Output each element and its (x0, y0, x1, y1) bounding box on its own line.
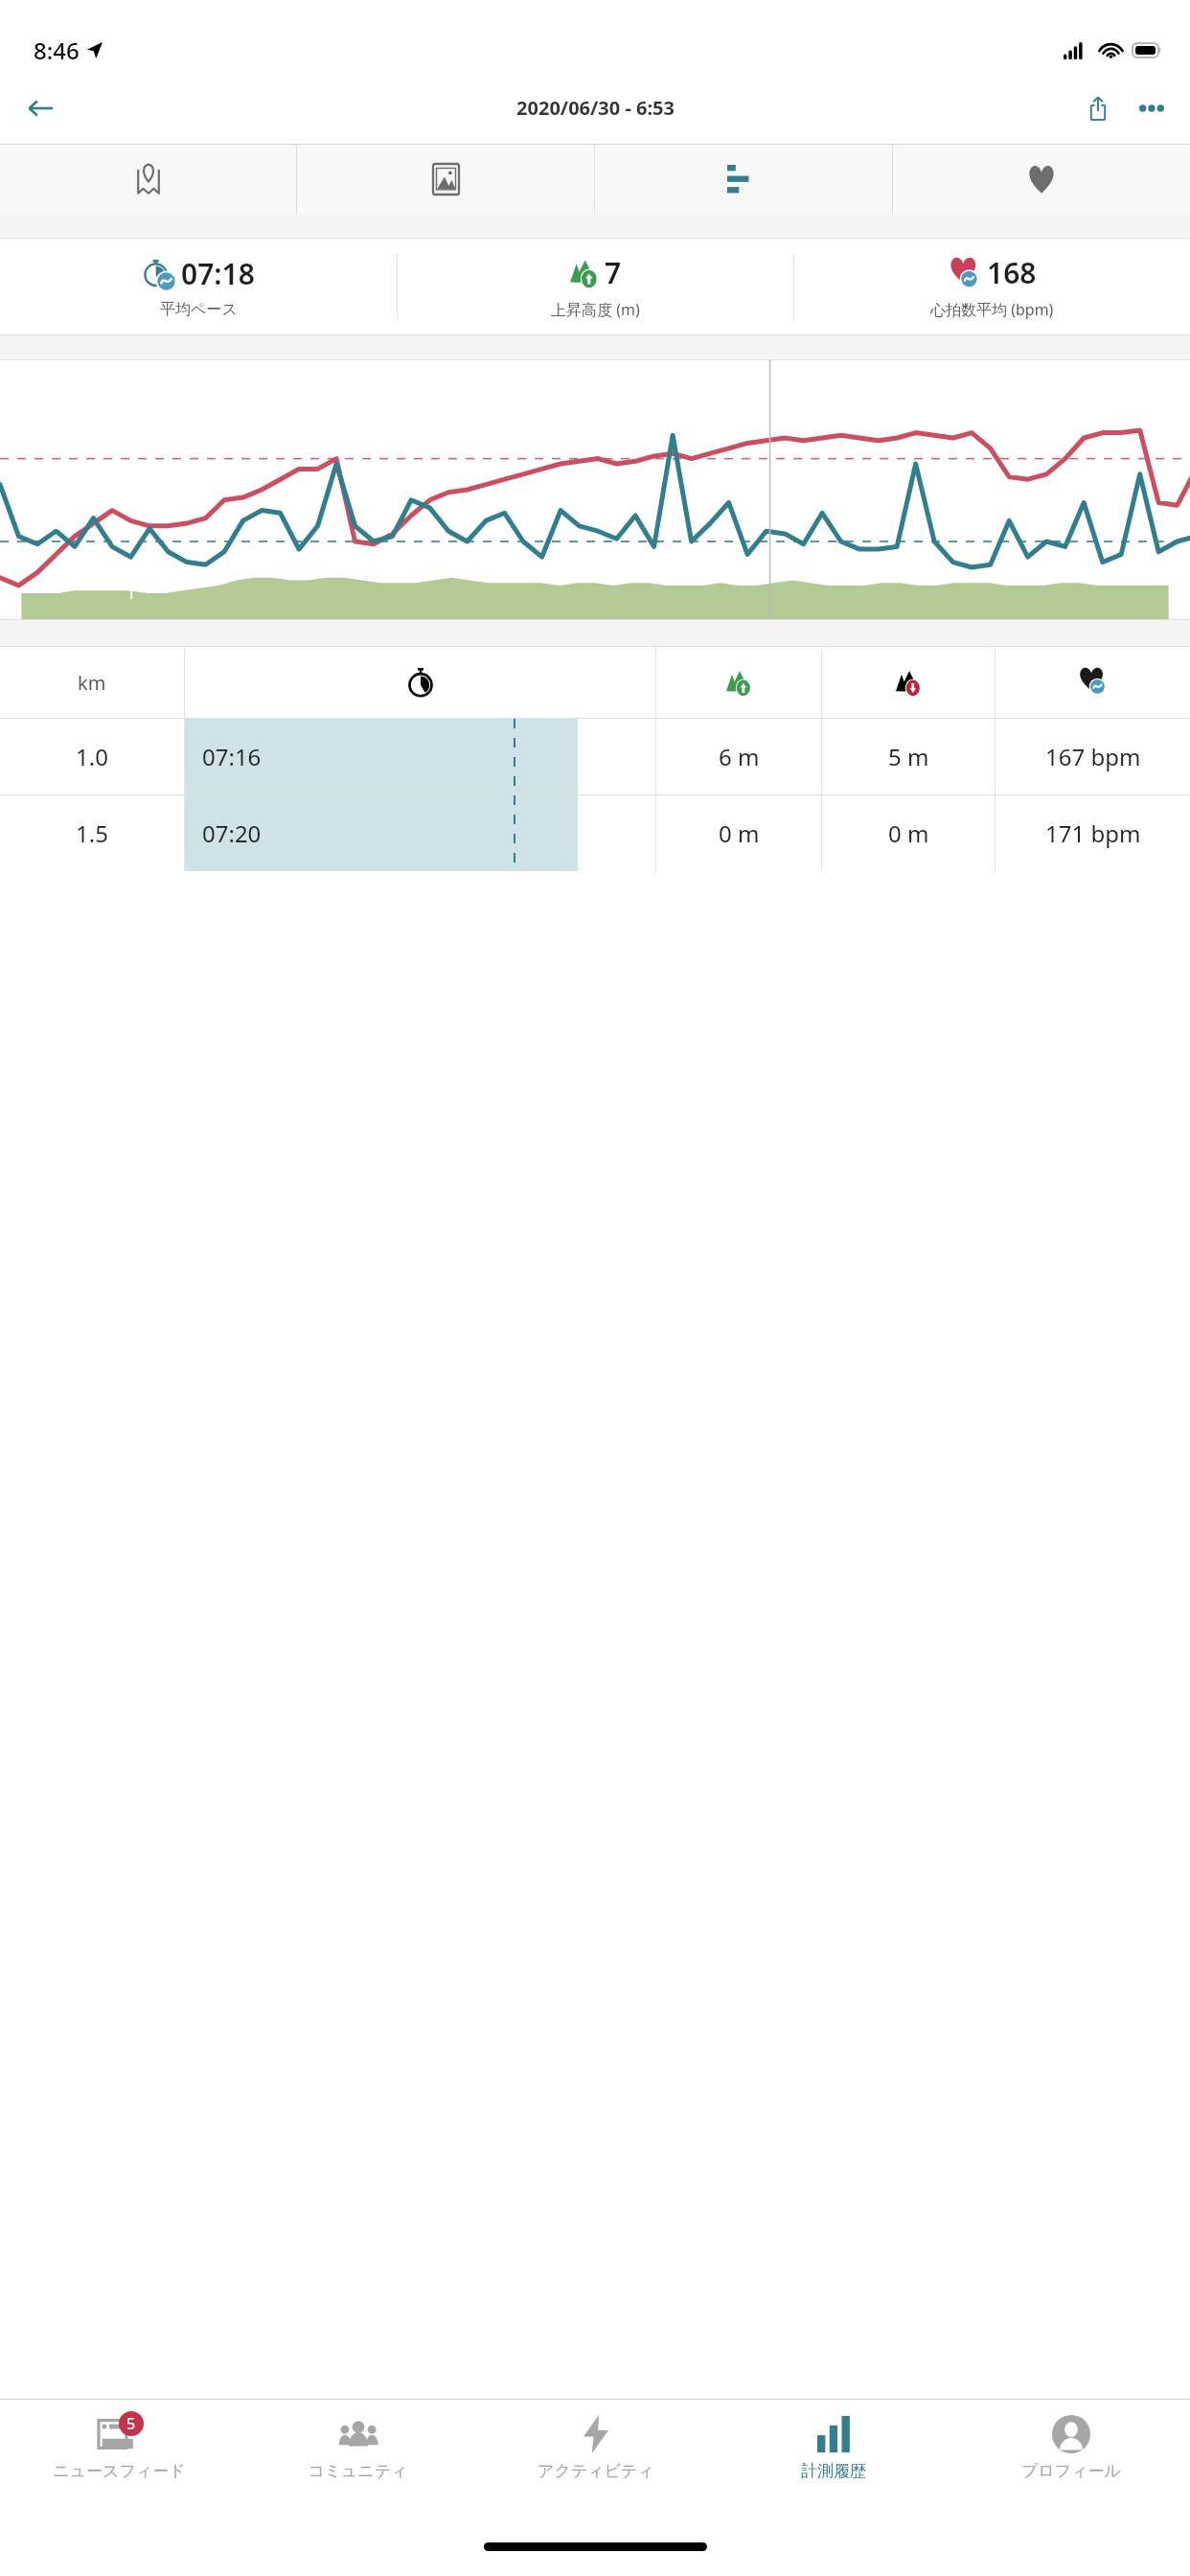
button[interactable]: 1.5 (0, 795, 1190, 871)
button[interactable]: Photos (297, 145, 594, 214)
staticText: 8:46 (34, 34, 80, 66)
button[interactable]: アクティビティ (477, 2400, 715, 2517)
staticText: 07:20 (202, 817, 262, 849)
button[interactable]: プロフィール (952, 2400, 1190, 2517)
button[interactable]: Map (0, 145, 296, 214)
staticText: 0 m (719, 817, 760, 849)
staticText: 5 (126, 2413, 136, 2434)
button[interactable]: 07:18 (0, 239, 397, 334)
button[interactable]: More options (1125, 81, 1179, 135)
button[interactable]: Graph (595, 145, 892, 214)
staticText: km (78, 670, 106, 696)
staticText: 2020/06/30 - 6:53 (516, 95, 675, 121)
staticText: 5 m (888, 741, 929, 772)
button[interactable]: 7 (398, 239, 793, 334)
staticText: 上昇高度 (m) (551, 299, 640, 320)
staticText: ニュースフィード (53, 2461, 186, 2481)
button[interactable]: 1.0 (0, 719, 1190, 794)
staticText: 168 (987, 253, 1037, 292)
staticText: アクティビティ (538, 2461, 654, 2481)
staticText: 1.0 (76, 741, 108, 772)
staticText: 平均ペース (160, 300, 238, 319)
staticText: 171 bpm (1045, 817, 1141, 849)
staticText: 計測履歴 (801, 2461, 866, 2481)
staticText: 07:16 (202, 741, 262, 772)
button[interactable]: Share (1071, 81, 1125, 135)
button[interactable]: 168 (794, 239, 1190, 334)
staticText: プロフィール (1021, 2461, 1121, 2481)
button[interactable]: 計測履歴 (715, 2400, 952, 2517)
staticText: 1.5 (76, 817, 108, 849)
button[interactable]: Back (13, 81, 67, 135)
button[interactable]: Heart rate (893, 145, 1190, 214)
staticText: 0 m (888, 817, 929, 849)
button[interactable]: 1 (0, 360, 1190, 619)
button[interactable]: 5 (0, 2400, 239, 2517)
staticText: 167 bpm (1045, 741, 1141, 772)
button[interactable]: コミュニティ (239, 2400, 477, 2517)
staticText: 1 (126, 582, 136, 604)
staticText: 7 (605, 253, 622, 292)
staticText: 07:18 (181, 254, 255, 293)
staticText: 6 m (719, 741, 760, 772)
staticText: 心拍数平均 (bpm) (930, 299, 1054, 320)
staticText: コミュニティ (308, 2461, 408, 2481)
